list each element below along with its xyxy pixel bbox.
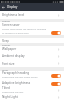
staticText: Screen saver — [2, 23, 20, 27]
button[interactable]: Paragraph heading — [0, 71, 64, 79]
button[interactable]: Wallpaper — [0, 46, 64, 52]
button[interactable]: Navigate up — [1, 5, 6, 10]
staticText: Wallpaper — [2, 47, 17, 51]
button[interactable]: Sleep — [0, 38, 64, 43]
button[interactable]: Screen saver — [0, 22, 64, 35]
staticText: More — [2, 68, 8, 71]
staticText: Sleep — [2, 39, 9, 43]
button[interactable]: Toggle switch — [51, 30, 61, 35]
staticText: Adaptive brightness — [2, 81, 31, 85]
staticText: Supporting line text lorem ipsum — [2, 76, 38, 79]
staticText: Ambient display — [2, 54, 25, 58]
button[interactable]: Toggle switch — [51, 82, 61, 86]
button[interactable]: Ambient display — [0, 52, 64, 60]
staticText: Screen saver when the device is charging… — [2, 28, 48, 34]
button[interactable]: Tilted — [0, 86, 64, 94]
staticText: Paragraph heading — [2, 71, 30, 75]
staticText: Night Light — [2, 95, 18, 99]
button[interactable]: Brightness level — [0, 11, 64, 19]
button[interactable]: Night Light — [0, 94, 64, 100]
button[interactable]: Font size — [0, 60, 64, 67]
staticText: Font size — [2, 62, 15, 66]
button[interactable]: Adaptive brightness — [0, 79, 64, 86]
staticText: Tilted — [2, 86, 10, 90]
staticText: Brightness level — [2, 13, 25, 17]
staticText: Supporting line text — [2, 91, 24, 94]
button[interactable]: Toggle switch — [51, 73, 61, 78]
staticText: Display — [2, 43, 11, 46]
staticText: Display — [7, 5, 18, 9]
staticText: Theme — [2, 19, 10, 22]
